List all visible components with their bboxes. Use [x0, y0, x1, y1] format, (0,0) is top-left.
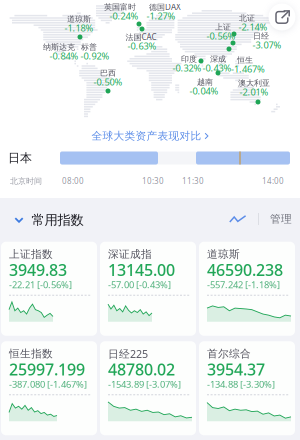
staticText: -1.27% — [146, 10, 175, 22]
staticText: -0.92% — [80, 50, 109, 62]
staticText: 纳斯达克 — [43, 42, 75, 52]
button[interactable]: 管理 — [264, 206, 298, 231]
staticText: 深证成指 — [108, 248, 152, 261]
staticText: 道琼斯 — [67, 14, 91, 24]
staticText: 标普 — [81, 42, 97, 52]
staticText: -134.88 [-3.30%] — [207, 378, 275, 390]
staticText: 11:30 — [182, 176, 204, 186]
staticText: 恒生 — [237, 55, 253, 65]
staticText: -0.04% — [189, 85, 218, 97]
button[interactable]: 全球大类资产表现对比 — [91, 129, 208, 142]
staticText: -0.32% — [172, 62, 201, 74]
staticText: 上证 — [215, 22, 231, 32]
staticText: 46590.238 — [207, 259, 283, 280]
staticText: 3949.83 — [9, 259, 67, 280]
staticText: 13145.00 — [108, 259, 175, 280]
staticText: 日经 — [253, 31, 269, 41]
staticText: 日经225 — [108, 347, 148, 361]
staticText: -0.50% — [93, 76, 122, 88]
button[interactable]: 分享 — [268, 3, 295, 30]
staticText: -0.24% — [109, 10, 138, 22]
staticText: 巴西 — [100, 68, 116, 78]
staticText: -1.467% — [231, 63, 265, 75]
staticText: 印度 — [181, 54, 197, 64]
staticText: -0.43% — [202, 62, 231, 74]
button[interactable]: 上证指数 — [1, 242, 97, 336]
staticText: -557.242 [-1.18%] — [207, 279, 280, 291]
staticText: 3954.37 — [207, 359, 265, 380]
staticText: -22.21 [-0.56%] — [9, 279, 72, 291]
staticText: -2.01% — [239, 86, 268, 98]
staticText: -1543.89 [-3.07%] — [108, 378, 181, 390]
staticText: 25997.199 — [9, 359, 85, 380]
staticText: 深成 — [210, 54, 226, 64]
staticText: 48780.02 — [108, 359, 175, 380]
button[interactable]: 日经225 — [100, 341, 196, 435]
staticText: -2.14% — [238, 21, 267, 33]
staticText: 常用指数 — [32, 212, 84, 228]
staticText: -0.63% — [127, 40, 156, 52]
staticText: 澳大利亚 — [238, 78, 270, 88]
button[interactable]: 恒生指数 — [1, 341, 97, 435]
staticText: 首尔综合 — [207, 347, 251, 360]
staticText: 法国CAC — [125, 32, 156, 42]
staticText: 全球大类资产表现对比 — [91, 129, 201, 142]
staticText: 08:00 — [62, 176, 84, 186]
staticText: 北证 — [239, 13, 255, 23]
staticText: -57.00 [-0.43%] — [108, 279, 171, 291]
staticText: -0.84% — [49, 50, 78, 62]
button[interactable]: 首尔综合 — [199, 341, 295, 435]
button[interactable]: 深证成指 — [100, 242, 196, 336]
staticText: -387.080 [-1.467%] — [9, 378, 87, 390]
staticText: -3.07% — [252, 39, 281, 51]
staticText: 10:30 — [142, 176, 164, 186]
staticText: -1.18% — [64, 22, 93, 34]
button[interactable]: 走势图 — [223, 209, 253, 229]
staticText: 德国DAX — [149, 2, 181, 12]
button[interactable]: 道琼斯 — [199, 242, 295, 336]
staticText: 日本 — [8, 151, 32, 165]
staticText: 管理 — [270, 212, 292, 225]
button[interactable]: 常用指数 — [4, 206, 90, 234]
staticText: 英国富时 — [104, 2, 136, 12]
staticText: 道琼斯 — [207, 248, 240, 261]
staticText: -0.56% — [206, 30, 235, 42]
staticText: 上证指数 — [9, 248, 53, 261]
staticText: 14:00 — [262, 176, 284, 186]
staticText: 恒生指数 — [9, 347, 53, 360]
staticText: 越南 — [197, 77, 213, 87]
staticText: 北京时间 — [10, 176, 42, 186]
